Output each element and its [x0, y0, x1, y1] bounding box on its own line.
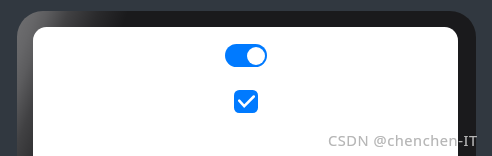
button[interactable]: Checkbox, checked — [234, 90, 258, 113]
button[interactable]: Toggle switch, on — [225, 44, 267, 67]
staticText: CSDN @chenchen-IT — [328, 130, 478, 150]
